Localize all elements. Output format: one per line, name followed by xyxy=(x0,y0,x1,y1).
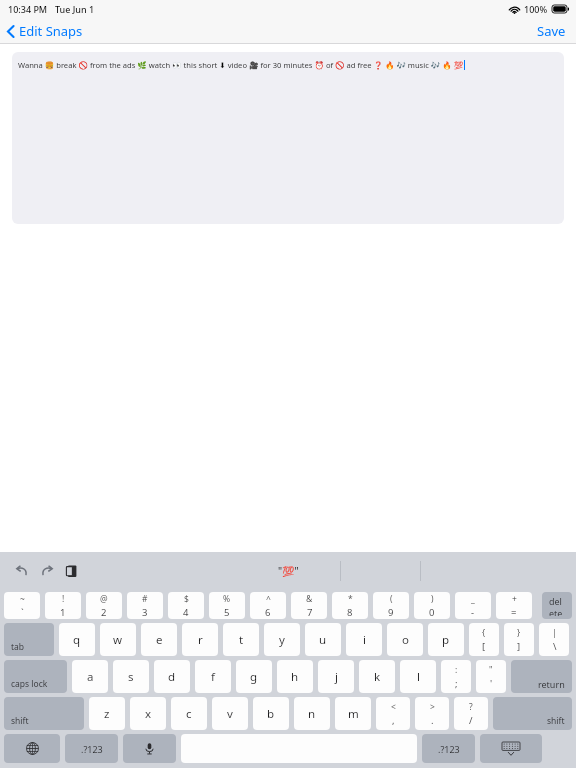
button[interactable]: o xyxy=(387,623,423,656)
button[interactable]: _ xyxy=(455,592,491,619)
button[interactable]: % xyxy=(209,592,245,619)
button[interactable]: z xyxy=(89,697,125,730)
staticText: d xyxy=(168,669,176,685)
button[interactable]: a xyxy=(72,660,108,693)
staticText: v xyxy=(227,706,233,722)
staticText: 3 xyxy=(142,606,148,619)
button[interactable]: Undo xyxy=(12,561,32,581)
staticText: .?123 xyxy=(438,743,460,755)
button[interactable]: .?123 xyxy=(65,734,118,763)
button[interactable]: Dictation xyxy=(123,734,176,763)
button[interactable]: h xyxy=(277,660,313,693)
staticText: ? xyxy=(469,701,473,713)
button[interactable]: tab xyxy=(4,623,54,656)
button[interactable]: | xyxy=(539,623,569,656)
button[interactable]: j xyxy=(318,660,354,693)
staticText: n xyxy=(308,706,316,722)
button[interactable]: u xyxy=(305,623,341,656)
button[interactable]: Save xyxy=(527,18,576,44)
button[interactable]: x xyxy=(130,697,166,730)
staticText: shift xyxy=(547,715,565,727)
button[interactable]: " xyxy=(476,660,506,693)
staticText: c xyxy=(186,706,192,722)
button[interactable]: i xyxy=(346,623,382,656)
staticText: ! xyxy=(62,593,65,605)
button[interactable]: n xyxy=(294,697,330,730)
staticText: , xyxy=(392,714,395,727)
staticText: # xyxy=(142,593,148,605)
button[interactable]: y xyxy=(264,623,300,656)
staticText: = xyxy=(511,606,517,619)
staticText: ^ xyxy=(266,593,271,605)
button[interactable]: : xyxy=(441,660,471,693)
button[interactable]: + xyxy=(496,592,532,619)
button[interactable]: shift xyxy=(4,697,84,730)
staticText: ' xyxy=(490,677,493,690)
button[interactable]: .?123 xyxy=(422,734,475,763)
staticText: t xyxy=(239,632,244,648)
staticText: e xyxy=(156,632,163,648)
button[interactable]: v xyxy=(212,697,248,730)
button[interactable]: k xyxy=(359,660,395,693)
button[interactable]: e xyxy=(141,623,177,656)
button[interactable]: delete xyxy=(542,592,572,619)
staticText: g xyxy=(250,669,258,685)
button[interactable]: return xyxy=(511,660,572,693)
button[interactable]: p xyxy=(428,623,464,656)
button[interactable]: shift xyxy=(493,697,572,730)
button[interactable]: l xyxy=(400,660,436,693)
button[interactable]: m xyxy=(335,697,371,730)
staticText: f xyxy=(211,669,215,685)
button[interactable]: t xyxy=(223,623,259,656)
button[interactable]: * xyxy=(332,592,368,619)
button[interactable]: caps lock xyxy=(4,660,67,693)
staticText: + xyxy=(512,593,517,605)
staticText: i xyxy=(363,632,366,648)
staticText: .?123 xyxy=(81,743,103,755)
button[interactable]: q xyxy=(59,623,95,656)
button[interactable]: g xyxy=(236,660,272,693)
staticText: 100% xyxy=(524,3,548,15)
button[interactable]: @ xyxy=(86,592,122,619)
staticText: tab xyxy=(11,641,25,653)
staticText: 5 xyxy=(224,606,230,619)
button[interactable]: Change keyboard xyxy=(4,734,60,763)
button[interactable]: d xyxy=(154,660,190,693)
button[interactable]: { xyxy=(469,623,499,656)
button[interactable]: ? xyxy=(454,697,488,730)
staticText: " xyxy=(489,664,493,676)
staticText: @ xyxy=(100,593,108,605)
button[interactable]: ) xyxy=(414,592,450,619)
button[interactable]: "💯" xyxy=(223,556,353,586)
staticText: o xyxy=(402,632,409,648)
button[interactable]: Wanna 🍔 break 🚫 from the ads 🌿 watch 👀 t… xyxy=(12,52,564,224)
button[interactable]: Paste xyxy=(62,561,82,581)
button[interactable]: f xyxy=(195,660,231,693)
button[interactable]: > xyxy=(415,697,449,730)
staticText: "💯" xyxy=(278,564,299,578)
button[interactable]: } xyxy=(504,623,534,656)
button[interactable]: Redo xyxy=(37,561,57,581)
button[interactable]: r xyxy=(182,623,218,656)
staticText: - xyxy=(471,606,475,619)
button[interactable]: b xyxy=(253,697,289,730)
button[interactable]: # xyxy=(127,592,163,619)
button[interactable]: < xyxy=(376,697,410,730)
button[interactable]: ( xyxy=(373,592,409,619)
staticText: Tue Jun 1 xyxy=(55,3,95,15)
button[interactable]: Hide keyboard xyxy=(480,734,542,763)
staticText: Edit Snaps xyxy=(19,22,83,40)
staticText: 0 xyxy=(429,606,435,619)
button[interactable]: ~ xyxy=(4,592,40,619)
staticText: 8 xyxy=(347,606,353,619)
button[interactable]: ! xyxy=(45,592,81,619)
staticText: w xyxy=(113,632,123,648)
button[interactable]: c xyxy=(171,697,207,730)
button[interactable]: w xyxy=(100,623,136,656)
button[interactable]: ^ xyxy=(250,592,286,619)
button[interactable]: $ xyxy=(168,592,204,619)
button[interactable]: & xyxy=(291,592,327,619)
button[interactable]: Back xyxy=(0,19,90,43)
button[interactable]: s xyxy=(113,660,149,693)
